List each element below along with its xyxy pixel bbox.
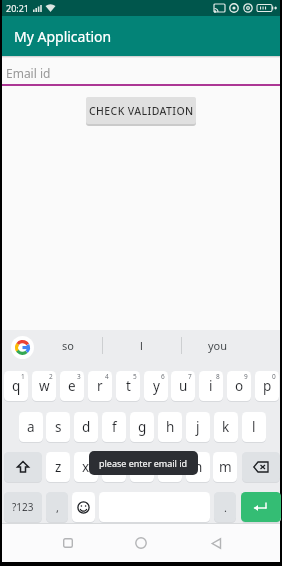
- button[interactable]: v: [130, 452, 154, 482]
- button[interactable]: k: [214, 412, 238, 442]
- staticText: i: [209, 377, 213, 395]
- button[interactable]: ?123: [4, 492, 42, 522]
- button[interactable]: [241, 492, 281, 522]
- button[interactable]: l: [112, 330, 170, 360]
- staticText: m: [219, 458, 232, 476]
- staticText: n: [194, 458, 203, 476]
- staticText: r: [97, 377, 103, 395]
- staticText: l: [140, 338, 143, 353]
- button[interactable]: [56, 531, 80, 555]
- button[interactable]: you: [192, 330, 244, 360]
- staticText: q: [12, 377, 21, 395]
- button[interactable]: Email id: [6, 65, 282, 81]
- button[interactable]: c: [102, 452, 126, 482]
- staticText: t: [126, 377, 131, 395]
- staticText: you: [208, 338, 228, 353]
- staticText: 8: [216, 372, 220, 381]
- button[interactable]: so: [44, 330, 92, 360]
- button[interactable]: .: [214, 492, 236, 522]
- staticText: 20:21: [6, 2, 30, 14]
- staticText: j: [196, 418, 200, 436]
- staticText: 2: [49, 372, 53, 381]
- staticText: 0: [272, 372, 276, 381]
- button[interactable]: s: [46, 412, 70, 442]
- staticText: g: [138, 418, 147, 436]
- staticText: l: [252, 418, 256, 436]
- staticText: c: [111, 458, 118, 476]
- staticText: d: [82, 418, 91, 436]
- button[interactable]: e: [60, 371, 84, 401]
- staticText: My Application: [14, 27, 112, 46]
- button[interactable]: r: [88, 371, 112, 401]
- staticText: so: [62, 338, 74, 353]
- button[interactable]: [204, 531, 228, 555]
- staticText: k: [222, 418, 230, 436]
- staticText: f: [112, 418, 117, 436]
- staticText: 1: [21, 372, 25, 381]
- staticText: 7: [188, 372, 192, 381]
- button[interactable]: u: [171, 371, 195, 401]
- staticText: .: [224, 500, 227, 515]
- staticText: 3: [77, 372, 81, 381]
- staticText: e: [68, 377, 76, 395]
- staticText: h: [166, 418, 175, 436]
- staticText: a: [27, 418, 35, 436]
- staticText: x: [82, 458, 90, 476]
- button[interactable]: t: [116, 371, 140, 401]
- button[interactable]: l: [242, 412, 266, 442]
- staticText: z: [55, 458, 62, 476]
- button[interactable]: f: [102, 412, 126, 442]
- button[interactable]: [129, 531, 153, 555]
- button[interactable]: n: [186, 452, 210, 482]
- button[interactable]: g: [130, 412, 154, 442]
- staticText: u: [179, 377, 188, 395]
- staticText: b: [166, 458, 175, 476]
- button[interactable]: m: [213, 452, 237, 482]
- staticText: y: [153, 377, 160, 395]
- staticText: w: [39, 377, 50, 395]
- button[interactable]: a: [19, 412, 43, 442]
- button[interactable]: x: [74, 452, 98, 482]
- staticText: p: [263, 377, 272, 395]
- button[interactable]: [4, 452, 42, 482]
- staticText: please enter email id: [99, 457, 188, 469]
- button[interactable]: j: [186, 412, 210, 442]
- button[interactable]: i: [199, 371, 223, 401]
- staticText: CHECK VALIDATION: [89, 104, 194, 118]
- button[interactable]: [72, 492, 95, 522]
- staticText: s: [55, 418, 62, 436]
- button[interactable]: o: [227, 371, 251, 401]
- staticText: ?123: [12, 500, 34, 514]
- button[interactable]: ,: [46, 492, 68, 522]
- button[interactable]: [11, 336, 34, 359]
- staticText: 4: [105, 372, 109, 381]
- button[interactable]: d: [74, 412, 98, 442]
- button[interactable]: b: [158, 452, 182, 482]
- staticText: 6: [161, 372, 165, 381]
- staticText: v: [139, 458, 146, 476]
- button[interactable]: y: [144, 371, 168, 401]
- button[interactable]: w: [32, 371, 56, 401]
- button[interactable]: z: [46, 452, 70, 482]
- staticText: o: [235, 377, 244, 395]
- button[interactable]: h: [158, 412, 182, 442]
- staticText: ,: [56, 500, 59, 515]
- button[interactable]: [242, 452, 280, 482]
- staticText: 9: [244, 372, 248, 381]
- button[interactable]: p: [255, 371, 279, 401]
- staticText: 5: [133, 372, 137, 381]
- button[interactable]: q: [4, 371, 28, 401]
- button[interactable]: CHECK VALIDATION: [86, 97, 196, 124]
